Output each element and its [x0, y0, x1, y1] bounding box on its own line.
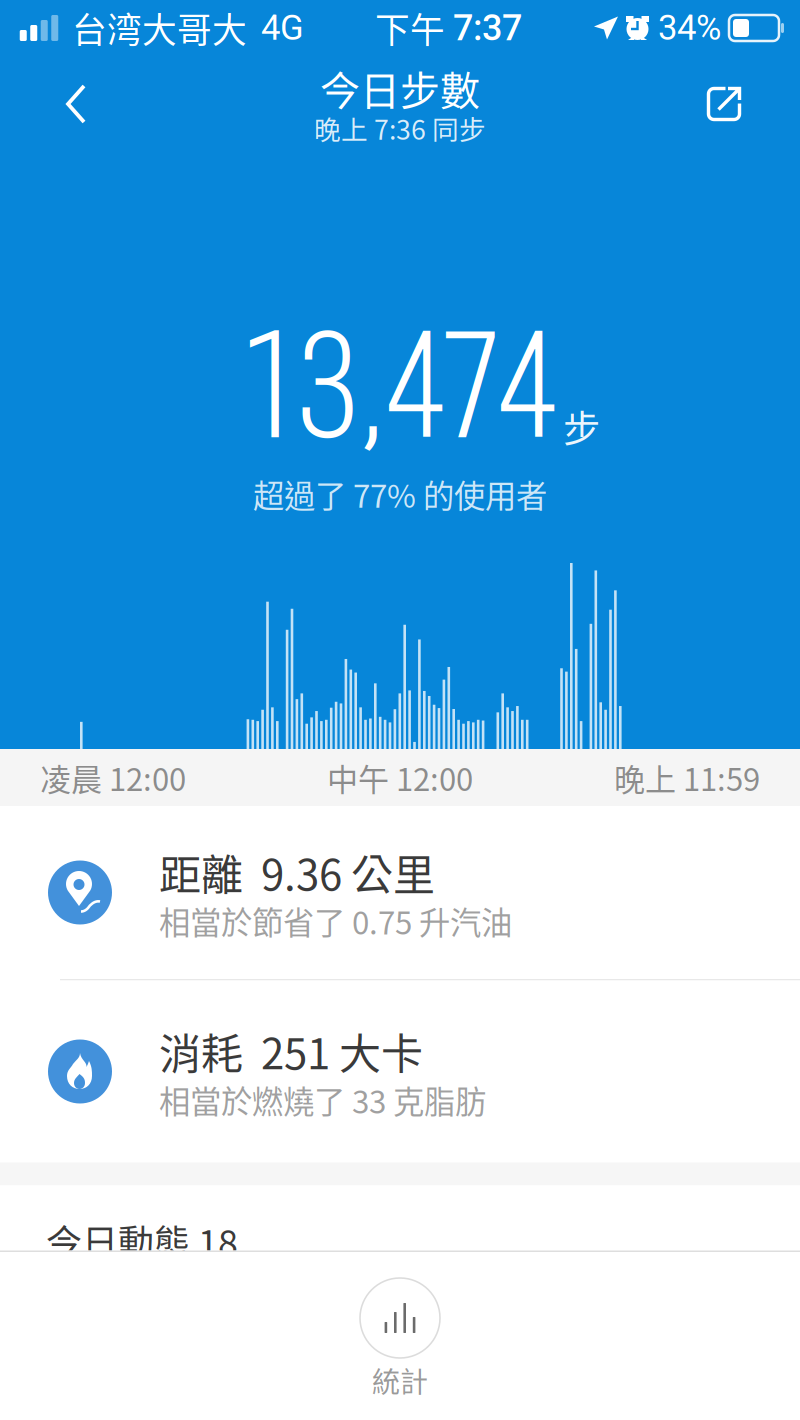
staticText: 台湾大哥大 — [72, 3, 247, 53]
staticText: 超過了 77% 的使用者 — [253, 471, 547, 517]
staticText: 步 — [563, 399, 600, 453]
staticText: 下午 — [375, 3, 453, 53]
staticText: 今日步數 — [320, 59, 480, 117]
button[interactable]: 距離 9.36 公里 — [0, 806, 800, 979]
staticText: 消耗 251 大卡 — [159, 1020, 423, 1081]
staticText: 中午 12:00 — [327, 755, 473, 800]
staticText: 7:37 — [453, 7, 522, 49]
button[interactable]: 今日動態 18 — [0, 1185, 800, 1250]
staticText: 13,474 — [244, 300, 556, 473]
button[interactable]: 統計 — [0, 1252, 800, 1407]
staticText: 距離 9.36 公里 — [159, 841, 435, 902]
staticText: 34% — [658, 8, 721, 48]
button[interactable]: 消耗 251 大卡 — [0, 980, 800, 1162]
staticText: 凌晨 12:00 — [40, 755, 186, 800]
button[interactable]: Share — [682, 60, 766, 148]
button[interactable]: Back — [34, 60, 118, 148]
staticText: 今日動態 18 — [46, 1214, 238, 1266]
staticText: 相當於燃燒了 33 克脂肪 — [159, 1077, 486, 1123]
staticText: 4G — [261, 8, 304, 48]
staticText: 相當於節省了 0.75 升汽油 — [159, 898, 512, 944]
staticText: 晚上 7:36 同步 — [314, 109, 486, 147]
staticText: 晚上 11:59 — [614, 755, 760, 800]
staticText: 統計 — [372, 1360, 428, 1400]
